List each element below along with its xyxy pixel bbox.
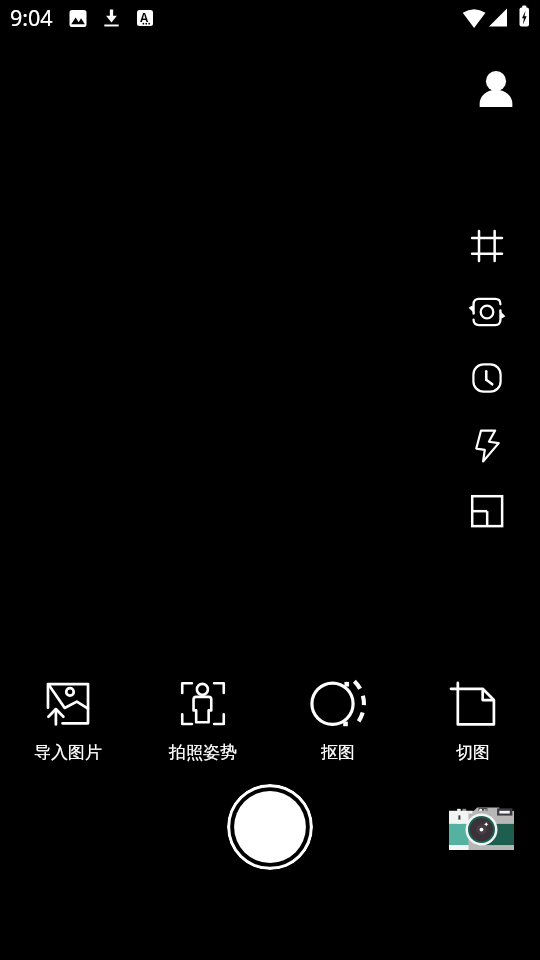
- button[interactable]: Grid lines: [463, 222, 511, 270]
- staticText: 切图: [456, 742, 490, 763]
- staticText: 拍照姿势: [169, 742, 237, 763]
- button[interactable]: Aspect ratio: [463, 487, 511, 535]
- staticText: 导入图片: [34, 742, 102, 763]
- button[interactable]: 切图: [405, 678, 540, 763]
- button[interactable]: 抠图: [270, 678, 405, 763]
- staticText: 9:04: [10, 3, 53, 32]
- button[interactable]: Switch camera: [463, 288, 511, 336]
- button[interactable]: Gallery: [449, 805, 514, 850]
- button[interactable]: Flash: [463, 422, 511, 470]
- button[interactable]: 导入图片: [0, 678, 135, 763]
- staticText: A: [140, 9, 149, 25]
- button[interactable]: Timer: [463, 354, 511, 402]
- button[interactable]: Profile: [464, 56, 528, 120]
- button[interactable]: 拍照姿势: [135, 678, 270, 763]
- staticText: 抠图: [321, 742, 355, 763]
- button[interactable]: Take photo: [227, 784, 313, 870]
